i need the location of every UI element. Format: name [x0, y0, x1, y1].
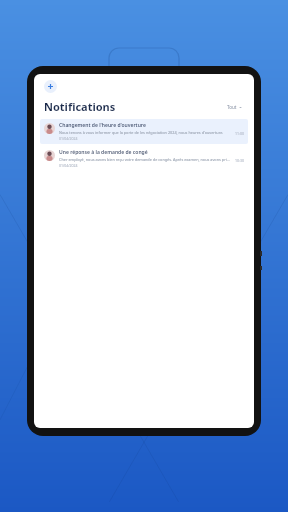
staticText: 01/04/2024 [59, 163, 78, 168]
staticText: 11:00 [235, 131, 244, 136]
button[interactable]: Tout [225, 102, 244, 112]
staticText: 10:30 [235, 158, 244, 163]
staticText: Une réponse à la demande de congé [59, 149, 148, 156]
staticText: Cher employé, nous avons bien reçu votre… [59, 157, 231, 162]
staticText: Notifications [44, 99, 116, 114]
staticText: Nous tenons à vous informer que la porte… [59, 130, 224, 135]
button[interactable]: Changement de l'heure d'ouverture [40, 119, 248, 144]
button[interactable]: Une réponse à la demande de congé [40, 146, 248, 171]
staticText: 01/04/2024 [59, 136, 78, 141]
other: Filter [239, 106, 242, 109]
staticText: Changement de l'heure d'ouverture [59, 122, 146, 129]
staticText: Tout [227, 104, 237, 110]
button[interactable]: Add [44, 80, 57, 93]
